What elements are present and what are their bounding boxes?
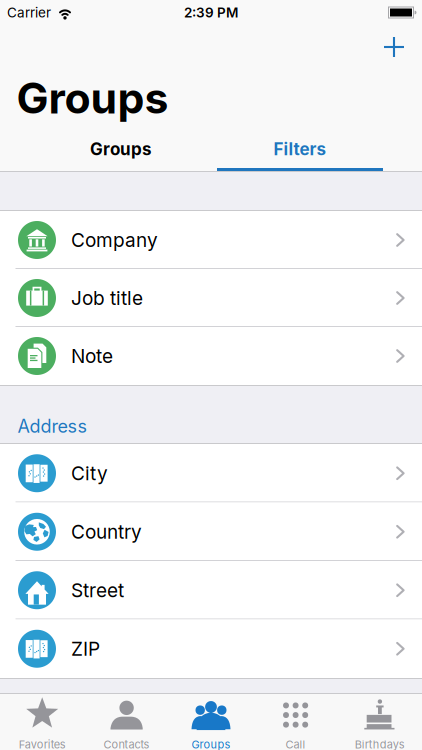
staticText: Groups — [90, 139, 152, 159]
staticText: ZIP — [71, 637, 100, 660]
button[interactable]: Country — [0, 502, 422, 561]
staticText: Address — [17, 415, 87, 437]
button[interactable]: Groups — [169, 694, 253, 750]
button[interactable]: Call — [253, 694, 338, 750]
staticText: Note — [71, 344, 113, 367]
button[interactable]: Favorites — [0, 694, 84, 750]
button[interactable]: Filters — [211, 127, 422, 171]
staticText: 2:39 PM — [184, 4, 238, 21]
button[interactable]: Birthdays — [338, 694, 422, 750]
staticText: Carrier — [7, 4, 51, 21]
staticText: Company — [71, 228, 158, 251]
button[interactable]: Company — [0, 211, 422, 269]
staticText: Favorites — [19, 738, 66, 750]
staticText: Country — [71, 520, 142, 543]
button[interactable]: City — [0, 444, 422, 502]
staticText: Groups — [16, 72, 168, 124]
staticText: Birthdays — [355, 738, 405, 750]
button[interactable]: Groups — [0, 127, 211, 171]
staticText: Street — [71, 579, 124, 602]
staticText: Groups — [191, 738, 230, 750]
button[interactable]: Add — [372, 25, 416, 69]
staticText: Contacts — [104, 738, 150, 750]
button[interactable]: Contacts — [84, 694, 169, 750]
staticText: Call — [285, 738, 305, 750]
button[interactable]: ZIP — [0, 619, 422, 678]
staticText: City — [71, 462, 108, 485]
staticText: Filters — [273, 139, 326, 159]
button[interactable]: Note — [0, 327, 422, 385]
button[interactable]: Street — [0, 561, 422, 619]
button[interactable]: Job title — [0, 269, 422, 327]
staticText: Job title — [71, 286, 143, 309]
